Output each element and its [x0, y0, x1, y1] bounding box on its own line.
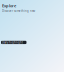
button[interactable]: Daily highlight: [1, 41, 26, 44]
staticText: Discover something new: [2, 9, 35, 13]
staticText: Explore: [2, 3, 16, 8]
staticText: Daily highlight: [2, 41, 23, 44]
